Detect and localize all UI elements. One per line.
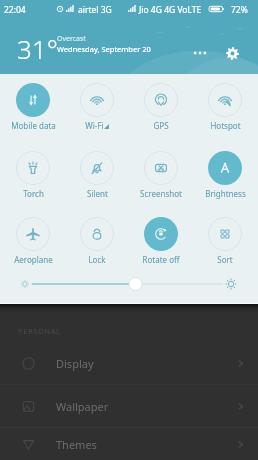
- staticText: Hotspot: [210, 120, 241, 131]
- button[interactable]: Mobile data: [2, 83, 64, 131]
- button[interactable]: Aeroplane: [2, 217, 64, 265]
- button[interactable]: Lock: [66, 217, 128, 265]
- staticText: Sort: [217, 254, 233, 265]
- button[interactable]: [0, 275, 258, 293]
- button[interactable]: Wi-Fi: [66, 83, 128, 131]
- staticText: 72%: [231, 4, 248, 16]
- button[interactable]: Hotspot: [194, 83, 256, 131]
- staticText: Display: [56, 356, 94, 371]
- button[interactable]: Themes: [0, 428, 258, 460]
- button[interactable]: Wallpaper: [0, 385, 258, 427]
- button[interactable]: Rotate off: [130, 217, 192, 265]
- button[interactable]: Torch: [2, 151, 64, 199]
- button[interactable]: Display: [0, 342, 258, 384]
- staticText: Torch: [23, 188, 44, 199]
- staticText: airtel 3G: [78, 4, 112, 16]
- staticText: Themes: [56, 437, 97, 452]
- staticText: PERSONAL: [18, 326, 61, 336]
- button[interactable]: Screenshot: [130, 151, 192, 199]
- staticText: Screenshot: [140, 188, 182, 199]
- staticText: Lock: [88, 254, 106, 265]
- staticText: Brightness: [205, 188, 246, 199]
- staticText: Wi-Fi: [85, 120, 104, 131]
- staticText: 31°: [17, 31, 58, 66]
- staticText: Mobile data: [11, 120, 56, 131]
- button[interactable]: More options: [189, 42, 211, 64]
- button[interactable]: Settings: [221, 42, 243, 64]
- staticText: Wednesday, September 20: [57, 44, 151, 54]
- button[interactable]: Sort: [194, 217, 256, 265]
- staticText: 22:04: [4, 4, 26, 16]
- button[interactable]: GPS: [130, 83, 192, 131]
- staticText: GPS: [153, 120, 169, 131]
- staticText: Overcast: [57, 34, 86, 44]
- button[interactable]: Silent: [66, 151, 128, 199]
- staticText: Wallpaper: [56, 399, 109, 414]
- staticText: Rotate off: [142, 254, 180, 265]
- staticText: Silent: [87, 188, 108, 199]
- staticText: Aeroplane: [14, 254, 53, 265]
- staticText: Jio 4G 4G VoLTE: [139, 4, 202, 16]
- button[interactable]: Brightness: [194, 151, 256, 199]
